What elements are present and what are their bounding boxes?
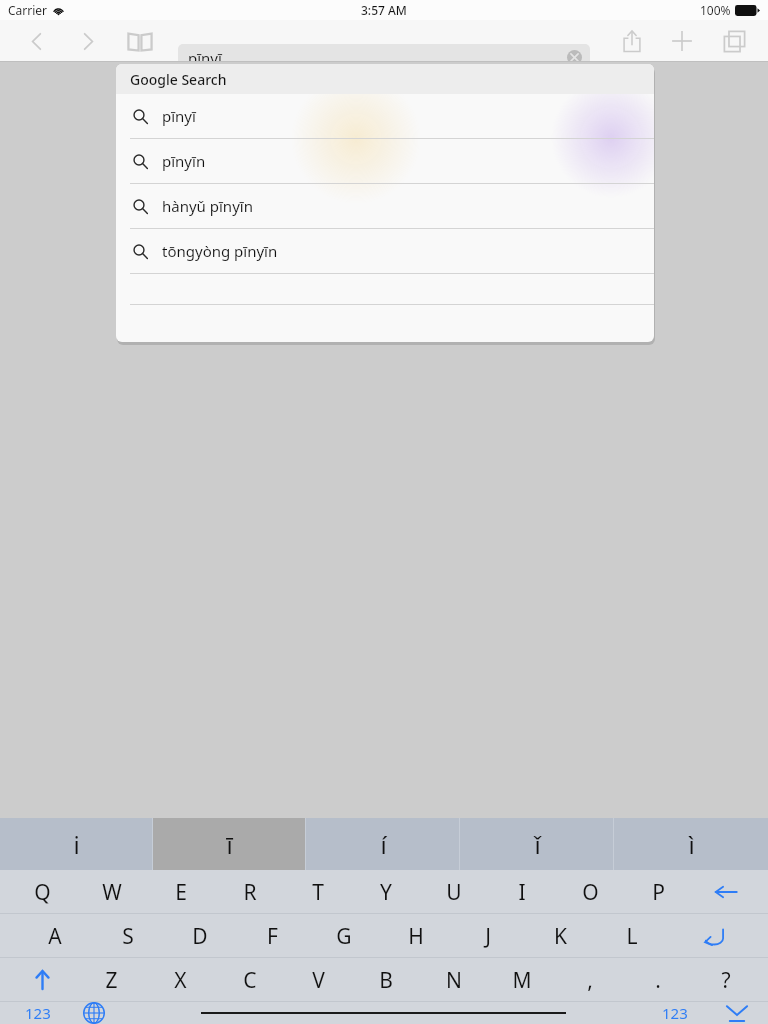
staticText: pīnyī [188,48,222,68]
button[interactable]: . [624,958,692,1002]
staticText: ī [226,828,233,861]
button[interactable]: Space [122,1002,644,1024]
staticText: pīnyīn [162,151,206,171]
staticText: Z [105,966,118,995]
button[interactable]: S [91,914,164,958]
button[interactable]: H [380,914,452,958]
button[interactable]: Clear text [567,50,582,65]
staticText: P [652,878,665,907]
button[interactable]: L [596,914,668,958]
button[interactable]: Shift [8,958,77,1002]
button[interactable]: T [284,870,352,914]
button[interactable]: New tab [662,20,702,62]
button[interactable]: F [236,914,308,958]
staticText: ? [721,966,731,995]
staticText: J [485,922,491,951]
staticText: X [174,966,187,995]
staticText: Google Search [130,70,227,89]
staticText: Q [34,878,51,907]
button[interactable]: pīnyīn [116,139,654,183]
staticText: H [408,922,424,951]
button[interactable]: í [306,818,460,870]
staticText: Y [380,878,392,907]
button[interactable]: ? [692,958,760,1002]
button[interactable]: G [308,914,380,958]
button[interactable]: X [146,958,215,1002]
button[interactable]: M [488,958,556,1002]
button[interactable]: pīnyī [116,94,654,138]
staticText: A [48,922,62,951]
staticText: ì [688,828,695,861]
button[interactable]: U [420,870,488,914]
button[interactable]: Bookmarks [122,20,158,62]
staticText: F [267,922,278,951]
button[interactable]: 123 [644,1002,706,1024]
staticText: tōngyòng pīnyīn [162,241,278,261]
button[interactable]: W [77,870,146,914]
staticText: 123 [25,1003,51,1023]
staticText: ǐ [534,828,541,861]
button[interactable]: Backspace [692,870,760,914]
staticText: W [102,878,122,907]
staticText: V [312,966,325,995]
button[interactable]: O [556,870,624,914]
button[interactable]: K [524,914,596,958]
staticText: O [582,878,599,907]
button[interactable]: 123 [10,1002,66,1024]
staticText: M [512,966,532,995]
button[interactable]: Change keyboard [66,1002,122,1024]
button[interactable]: hànyǔ pīnyīn [116,184,654,228]
staticText: B [379,966,393,995]
staticText: I [518,878,526,907]
button[interactable]: B [352,958,420,1002]
button[interactable]: , [556,958,624,1002]
staticText: pīnyī [162,106,196,126]
staticText: R [243,878,257,907]
button[interactable]: Forward [70,20,106,62]
staticText: D [192,922,208,951]
staticText: 100% [700,2,731,18]
button[interactable]: Hide keyboard [706,1002,768,1024]
button[interactable]: I [488,870,556,914]
button[interactable]: A [18,914,91,958]
staticText: hànyǔ pīnyīn [162,196,253,216]
staticText: G [336,922,352,951]
staticText: 3:57 AM [361,2,407,18]
button[interactable]: ì [614,818,768,870]
staticText: L [626,922,638,951]
staticText: 123 [662,1003,688,1023]
button[interactable]: D [164,914,236,958]
button[interactable]: R [215,870,284,914]
button[interactable]: Z [77,958,146,1002]
staticText: . [655,966,661,995]
staticText: T [312,878,324,907]
button[interactable]: N [420,958,488,1002]
staticText: E [175,878,187,907]
button[interactable]: C [215,958,284,1002]
button[interactable]: tōngyòng pīnyīn [116,229,654,273]
staticText: , [587,966,593,995]
button[interactable]: Tabs [714,20,754,62]
button[interactable]: V [284,958,352,1002]
staticText: U [446,878,462,907]
button[interactable]: i [0,818,153,870]
button[interactable]: Share [612,20,652,62]
button[interactable]: ī [153,818,306,870]
button[interactable]: Q [8,870,77,914]
button[interactable]: E [146,870,215,914]
staticText: S [122,922,134,951]
staticText: K [554,922,567,951]
button[interactable]: Back [18,20,54,62]
button[interactable]: Y [352,870,420,914]
button[interactable]: pīnyī [178,44,590,71]
staticText: C [243,966,257,995]
button[interactable]: Return [668,914,758,958]
button[interactable]: J [452,914,524,958]
button[interactable]: P [624,870,692,914]
staticText: Carrier [8,2,48,18]
staticText: N [446,966,462,995]
staticText: í [380,828,387,861]
button[interactable]: ǐ [460,818,614,870]
staticText: i [73,828,80,861]
